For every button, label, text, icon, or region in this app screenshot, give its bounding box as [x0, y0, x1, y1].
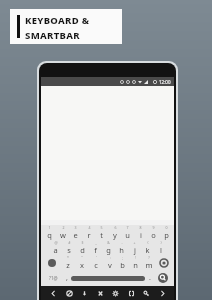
- button[interactable]: _: [89, 240, 102, 255]
- button[interactable]: 3: [69, 225, 82, 240]
- staticText: ,: [66, 273, 68, 283]
- staticText: f: [94, 245, 97, 255]
- button[interactable]: 7: [121, 225, 134, 240]
- button[interactable]: #: [62, 240, 76, 255]
- staticText: o: [151, 230, 156, 240]
- button[interactable]: Resize: [125, 287, 137, 299]
- staticText: ?: [148, 255, 150, 260]
- button[interactable]: Settings: [63, 287, 75, 299]
- button[interactable]: +: [128, 240, 141, 255]
- staticText: @: [54, 240, 58, 245]
- staticText: h: [119, 245, 124, 255]
- staticText: y: [113, 230, 117, 240]
- button[interactable]: 1: [42, 225, 56, 240]
- button[interactable]: KEYBOARD &: [10, 9, 122, 44]
- staticText: e: [73, 230, 78, 240]
- staticText: p: [164, 230, 169, 240]
- button[interactable]: 5: [95, 225, 108, 240]
- button[interactable]: Symbols: [44, 270, 62, 286]
- staticText: -: [121, 240, 123, 245]
- button[interactable]: -: [115, 240, 128, 255]
- button[interactable]: Shift: [43, 255, 61, 270]
- button[interactable]: ,: [62, 270, 71, 286]
- staticText: &: [107, 240, 110, 245]
- staticText: KEYBOARD &: [25, 14, 90, 27]
- staticText: k: [145, 245, 150, 255]
- staticText: z: [66, 260, 70, 270]
- button[interactable]: ): [154, 240, 167, 255]
- staticText: #: [68, 240, 71, 245]
- button[interactable]: Download: [78, 287, 90, 299]
- staticText: ?1@: [49, 275, 58, 281]
- button[interactable]: Backspace: [155, 255, 172, 270]
- button[interactable]: Space: [71, 270, 145, 286]
- button[interactable]: 4: [82, 225, 95, 240]
- staticText: ;: [122, 255, 123, 260]
- button[interactable]: @: [48, 240, 62, 255]
- staticText: b: [120, 260, 125, 270]
- button[interactable]: Search: [154, 270, 171, 286]
- staticText: r: [87, 230, 91, 240]
- staticText: s: [67, 245, 71, 255]
- staticText: g: [106, 245, 111, 255]
- staticText: 7: [126, 225, 129, 230]
- button[interactable]: 0: [160, 225, 173, 240]
- button[interactable]: Next: [156, 287, 168, 299]
- staticText: m: [145, 260, 153, 270]
- button[interactable]: 8: [134, 225, 147, 240]
- staticText: (: [147, 240, 149, 245]
- staticText: 3: [74, 225, 77, 230]
- button[interactable]: $: [76, 240, 89, 255]
- button[interactable]: Options: [109, 287, 121, 299]
- staticText: 6: [114, 225, 117, 230]
- staticText: d: [80, 245, 85, 255]
- button[interactable]: *: [61, 255, 75, 270]
- staticText: :: [110, 255, 111, 260]
- button[interactable]: ;: [116, 255, 129, 270]
- staticText: t: [100, 230, 103, 240]
- staticText: 2: [62, 225, 65, 230]
- button[interactable]: !: [129, 255, 142, 270]
- staticText: ": [81, 255, 83, 260]
- button[interactable]: Close: [94, 287, 106, 299]
- staticText: 9: [152, 225, 155, 230]
- staticText: l: [160, 245, 162, 255]
- button[interactable]: Previous: [47, 287, 59, 299]
- staticText: !: [135, 255, 136, 260]
- button[interactable]: ?: [142, 255, 155, 270]
- button[interactable]: (: [141, 240, 154, 255]
- button[interactable]: 2: [56, 225, 69, 240]
- button[interactable]: 6: [108, 225, 121, 240]
- staticText: 5: [100, 225, 103, 230]
- button[interactable]: ': [89, 255, 103, 270]
- staticText: SMARTBAR: [25, 29, 80, 42]
- button[interactable]: Key: [140, 287, 152, 299]
- staticText: q: [47, 230, 52, 240]
- staticText: .: [149, 273, 151, 283]
- staticText: _: [95, 240, 97, 245]
- staticText: n: [133, 260, 138, 270]
- staticText: c: [94, 260, 98, 270]
- staticText: u: [125, 230, 130, 240]
- staticText: a: [53, 245, 58, 255]
- staticText: ): [160, 240, 162, 245]
- staticText: ': [96, 255, 97, 260]
- staticText: j: [134, 245, 136, 255]
- button[interactable]: ": [75, 255, 89, 270]
- staticText: i: [140, 230, 142, 240]
- staticText: v: [108, 260, 112, 270]
- staticText: +: [133, 240, 136, 245]
- staticText: x: [80, 260, 84, 270]
- staticText: 12:00: [159, 79, 171, 85]
- button[interactable]: 9: [147, 225, 160, 240]
- staticText: $: [81, 240, 84, 245]
- staticText: 0: [165, 225, 168, 230]
- button[interactable]: .: [145, 270, 154, 286]
- button[interactable]: :: [103, 255, 116, 270]
- staticText: w: [60, 230, 66, 240]
- staticText: *: [67, 255, 69, 260]
- staticText: 1: [48, 225, 51, 230]
- staticText: 4: [88, 225, 91, 230]
- button[interactable]: &: [102, 240, 115, 255]
- staticText: 8: [139, 225, 142, 230]
